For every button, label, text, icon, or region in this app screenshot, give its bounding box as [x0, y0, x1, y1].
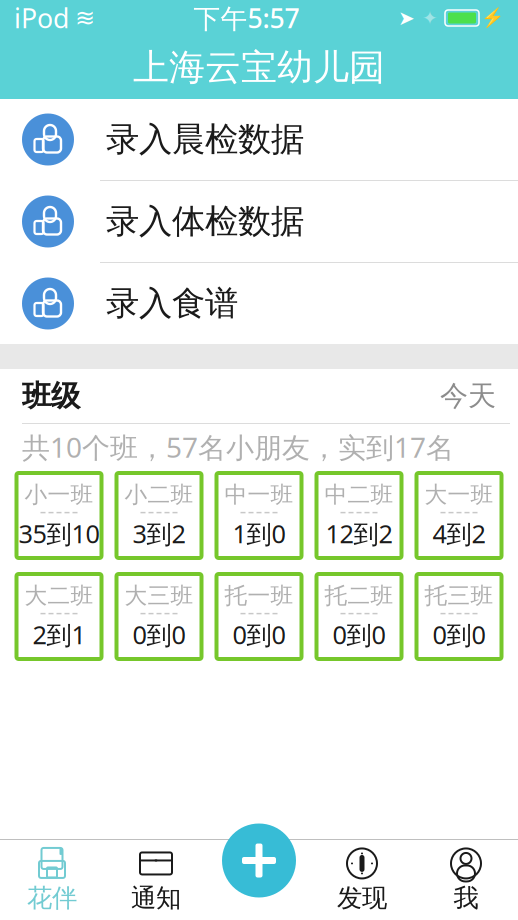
staticText: 托一班: [224, 582, 293, 610]
staticText: ≋: [75, 4, 95, 32]
staticText: 1到0: [232, 517, 285, 550]
button[interactable]: 大一班: [416, 473, 501, 558]
button[interactable]: 花伴: [0, 840, 104, 920]
button[interactable]: 发现: [310, 840, 414, 920]
staticText: 上海云宝幼儿园: [133, 45, 385, 90]
staticText: 今天: [440, 379, 496, 413]
button[interactable]: 大三班: [116, 574, 201, 659]
staticText: 共10个班，57名小朋友，实到17名: [22, 428, 454, 466]
button[interactable]: 中一班: [216, 473, 301, 558]
staticText: 今天: [440, 876, 496, 910]
staticText: 中一班: [224, 481, 293, 509]
staticText: 35到10: [18, 517, 99, 550]
staticText: 0到0: [232, 618, 285, 651]
button[interactable]: 录入体检数据: [0, 181, 518, 263]
staticText: 发现: [337, 882, 387, 913]
staticText: 托三班: [424, 582, 493, 610]
staticText: 通知: [131, 882, 181, 913]
staticText: 0到0: [432, 618, 485, 651]
staticText: 录入体检数据: [106, 201, 304, 242]
staticText: ✦: [422, 7, 438, 29]
staticText: 录入食谱: [106, 283, 238, 324]
button[interactable]: 小二班: [116, 473, 201, 558]
staticText: 托二班: [324, 582, 393, 610]
staticText: 健康动态: [22, 875, 138, 911]
button[interactable]: 中二班: [316, 473, 401, 558]
button[interactable]: 托一班: [216, 574, 301, 659]
staticText: iPod: [14, 0, 69, 36]
staticText: 录入晨检数据: [106, 119, 304, 160]
button[interactable]: 录入晨检数据: [0, 99, 518, 181]
staticText: 12到2: [325, 517, 392, 550]
staticText: 班级: [22, 378, 80, 414]
staticText: 小一班: [24, 481, 93, 509]
button[interactable]: 小一班: [16, 473, 101, 558]
staticText: ➤: [398, 7, 415, 29]
staticText: ⚡: [481, 7, 504, 29]
button[interactable]: 通知: [104, 840, 208, 920]
staticText: 大一班: [424, 481, 493, 509]
staticText: 小二班: [124, 481, 193, 509]
button[interactable]: 托二班: [316, 574, 401, 659]
staticText: 3到2: [132, 517, 185, 550]
staticText: 我: [453, 882, 478, 913]
button[interactable]: 托三班: [416, 574, 501, 659]
button[interactable]: 我: [414, 840, 518, 920]
button[interactable]: 新建: [222, 823, 296, 897]
button[interactable]: 大二班: [16, 574, 101, 659]
staticText: 大三班: [124, 582, 193, 610]
staticText: 2到1: [32, 618, 85, 651]
staticText: 中二班: [324, 481, 393, 509]
staticText: 0到0: [132, 618, 185, 651]
staticText: 4到2: [432, 517, 485, 550]
staticText: 大二班: [24, 582, 93, 610]
staticText: 0到0: [332, 618, 385, 651]
button[interactable]: 录入食谱: [0, 263, 518, 344]
staticText: 花伴: [27, 882, 77, 913]
staticText: 下午5:57: [193, 0, 299, 36]
